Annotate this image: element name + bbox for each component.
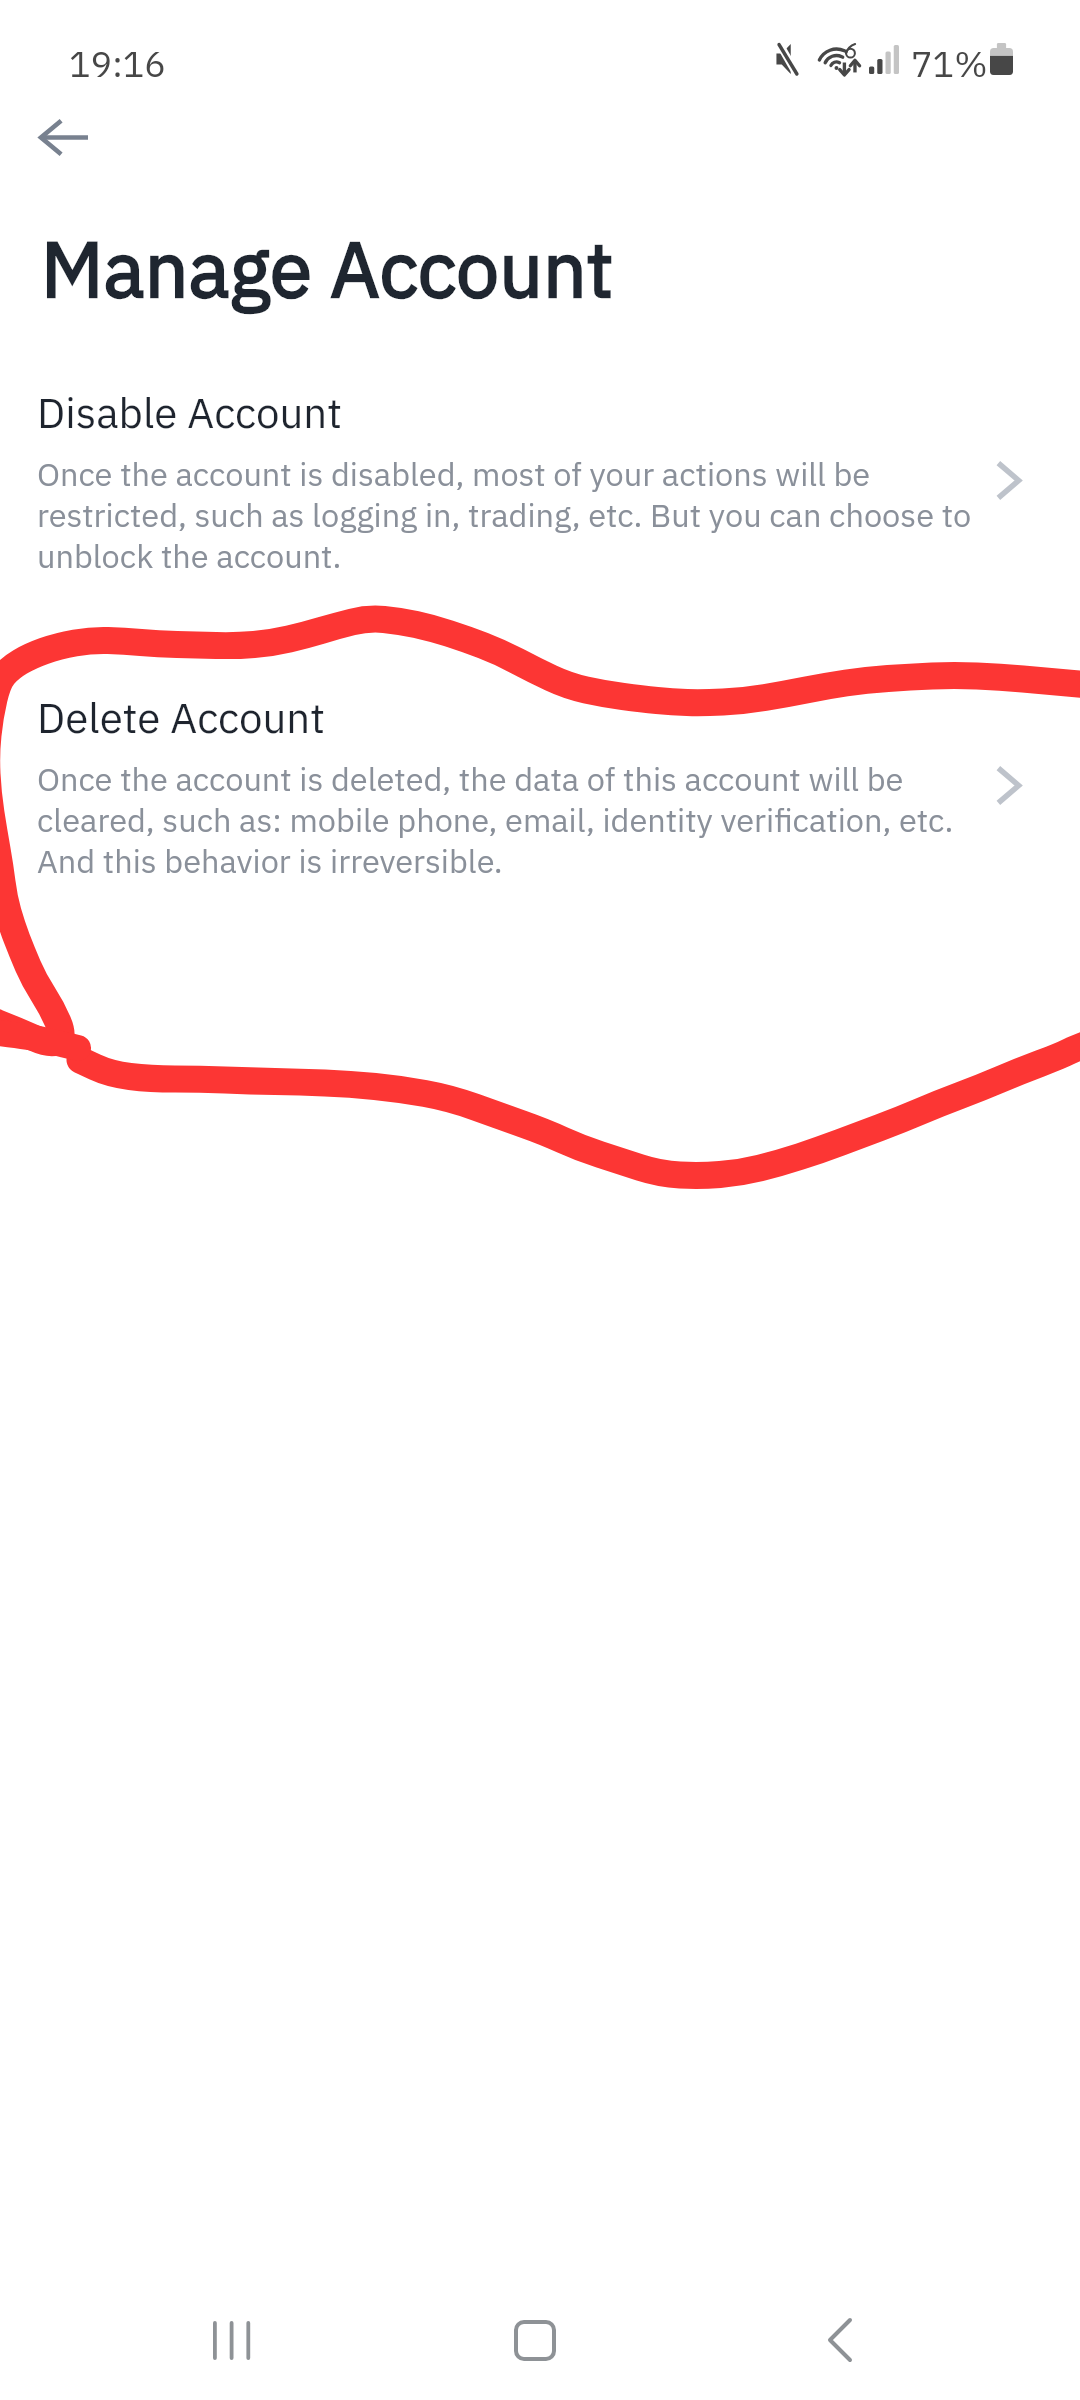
button[interactable]: Home xyxy=(465,2290,605,2400)
staticText: Once the account is disabled, most of yo… xyxy=(37,453,977,577)
button[interactable]: Delete Account xyxy=(0,690,1080,905)
staticText: Once the account is deleted, the data of… xyxy=(37,758,977,882)
button[interactable]: Back xyxy=(18,95,110,179)
staticText: 71% xyxy=(911,40,988,87)
button[interactable]: Disable Account xyxy=(0,385,1080,600)
button[interactable]: Back xyxy=(772,2290,912,2400)
button[interactable]: Recent apps xyxy=(163,2290,303,2400)
staticText: 19:16 xyxy=(69,40,166,87)
staticText: Manage Account xyxy=(41,218,614,318)
staticText: Delete Account xyxy=(37,690,325,745)
staticText: Disable Account xyxy=(37,385,342,440)
